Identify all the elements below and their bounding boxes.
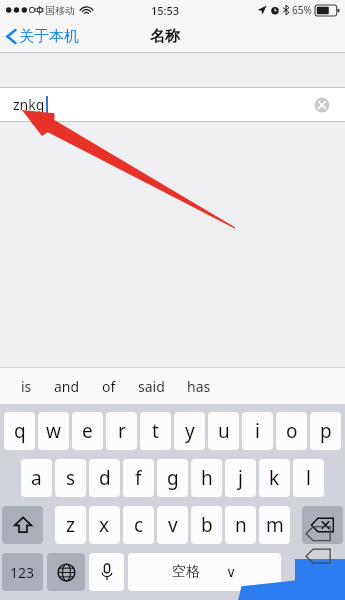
staticText: znkg xyxy=(13,95,45,114)
button[interactable]: y xyxy=(174,412,205,450)
button[interactable]: 空格 xyxy=(128,553,281,591)
staticText: 空格 xyxy=(172,563,200,581)
button[interactable]: s xyxy=(55,459,86,497)
staticText: z xyxy=(66,512,75,538)
staticText: is xyxy=(21,377,32,396)
staticText: 关于本机 xyxy=(19,27,79,46)
staticText: h xyxy=(201,465,213,491)
staticText: l xyxy=(306,465,311,491)
staticText: 中国移动 xyxy=(35,4,75,17)
staticText: r xyxy=(118,418,126,444)
staticText: of xyxy=(102,377,116,396)
staticText: and xyxy=(54,377,80,396)
staticText: n xyxy=(235,512,247,538)
button[interactable]: j xyxy=(225,459,256,497)
button[interactable]: v xyxy=(157,506,188,544)
button[interactable]: o xyxy=(276,412,307,450)
button[interactable]: is xyxy=(10,371,43,402)
staticText: c xyxy=(134,512,144,538)
staticText: g xyxy=(167,465,179,491)
staticText: q xyxy=(14,418,26,444)
staticText: 名称 xyxy=(150,27,180,46)
button[interactable]: n xyxy=(225,506,256,544)
button[interactable]: Voice input xyxy=(89,553,124,591)
staticText: d xyxy=(99,465,111,491)
staticText: e xyxy=(82,418,93,444)
button[interactable]: a xyxy=(21,459,52,497)
button[interactable]: f xyxy=(123,459,154,497)
staticText: s xyxy=(66,465,76,491)
staticText: j xyxy=(238,465,243,491)
button[interactable]: of xyxy=(91,371,127,402)
button[interactable]: 关于本机 xyxy=(0,24,89,49)
button[interactable]: e xyxy=(72,412,103,450)
button[interactable]: r xyxy=(106,412,137,450)
button[interactable]: m xyxy=(259,506,290,544)
staticText: 65% xyxy=(292,3,312,17)
button[interactable]: and xyxy=(43,371,91,402)
staticText: has xyxy=(187,377,211,396)
staticText: w xyxy=(46,418,61,444)
button[interactable]: c xyxy=(123,506,154,544)
staticText: x xyxy=(99,512,110,538)
staticText: f xyxy=(135,465,142,491)
button[interactable]: p xyxy=(310,412,341,450)
staticText: ∨ xyxy=(226,564,237,580)
staticText: m xyxy=(266,512,284,538)
button[interactable]: x xyxy=(89,506,120,544)
staticText: b xyxy=(201,512,213,538)
staticText: a xyxy=(31,465,42,491)
button[interactable]: said xyxy=(127,371,176,402)
button[interactable]: t xyxy=(140,412,171,450)
button[interactable]: 123 xyxy=(2,553,43,591)
staticText: 15:53 xyxy=(151,3,180,18)
button[interactable]: k xyxy=(259,459,290,497)
button[interactable]: q xyxy=(4,412,35,450)
button[interactable]: z xyxy=(55,506,86,544)
button[interactable]: b xyxy=(191,506,222,544)
button[interactable]: has xyxy=(176,371,222,402)
button[interactable]: Backspace xyxy=(302,506,343,544)
staticText: k xyxy=(269,465,280,491)
staticText: i xyxy=(255,418,260,444)
button[interactable]: Shift xyxy=(2,506,43,544)
staticText: 123 xyxy=(10,563,35,582)
staticText: o xyxy=(286,418,298,444)
staticText: y xyxy=(185,418,195,444)
staticText: p xyxy=(320,418,332,444)
button[interactable]: d xyxy=(89,459,120,497)
button[interactable]: u xyxy=(208,412,239,450)
button[interactable]: h xyxy=(191,459,222,497)
button[interactable]: Switch keyboard xyxy=(47,553,85,591)
staticText: u xyxy=(218,418,230,444)
staticText: said xyxy=(138,377,165,396)
button[interactable]: i xyxy=(242,412,273,450)
button[interactable]: l xyxy=(293,459,324,497)
staticText: t xyxy=(152,418,159,444)
button[interactable]: g xyxy=(157,459,188,497)
staticText: v xyxy=(168,512,178,538)
button[interactable]: w xyxy=(38,412,69,450)
button[interactable]: znkg xyxy=(0,87,345,122)
button[interactable]: Clear text xyxy=(311,94,333,116)
